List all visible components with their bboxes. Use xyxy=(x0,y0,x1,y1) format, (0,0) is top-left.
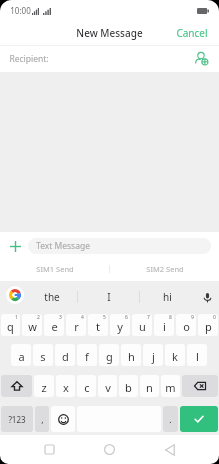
button[interactable]: v xyxy=(98,375,117,397)
staticText: 0 xyxy=(213,314,216,321)
staticText: a xyxy=(18,349,25,364)
staticText: f xyxy=(85,349,89,364)
staticText: s xyxy=(40,349,46,364)
button[interactable]: t xyxy=(88,314,108,336)
staticText: j xyxy=(152,349,155,364)
staticText: 3 xyxy=(59,314,62,321)
button[interactable]: u xyxy=(132,314,152,336)
button[interactable]: p xyxy=(198,314,218,336)
button[interactable]: z xyxy=(34,375,54,397)
button[interactable]: I xyxy=(78,281,139,313)
staticText: 6 xyxy=(125,314,128,321)
staticText: l xyxy=(196,349,199,364)
button[interactable]: g xyxy=(99,344,119,366)
staticText: 1 xyxy=(15,314,18,321)
button[interactable]: . xyxy=(163,406,178,432)
button[interactable]: n xyxy=(140,375,159,397)
staticText: z xyxy=(41,380,47,395)
button[interactable]: the xyxy=(26,281,78,313)
staticText: New Message xyxy=(76,26,143,40)
button[interactable]: Send xyxy=(180,406,218,432)
button[interactable]: Back xyxy=(158,438,181,461)
staticText: q xyxy=(7,319,14,334)
staticText: , xyxy=(41,413,44,425)
button[interactable]: e xyxy=(44,314,64,336)
staticText: p xyxy=(205,319,212,334)
button[interactable]: Voice input xyxy=(196,281,218,313)
button[interactable]: q xyxy=(1,314,20,336)
staticText: 7 xyxy=(147,314,150,321)
staticText: t xyxy=(96,319,100,334)
staticText: b xyxy=(125,380,132,395)
staticText: Recipient: xyxy=(9,53,49,65)
staticText: n xyxy=(146,380,153,395)
staticText: I xyxy=(107,290,111,304)
staticText: 2 xyxy=(37,314,40,321)
staticText: hi xyxy=(163,290,172,304)
staticText: 9 xyxy=(191,314,194,321)
button[interactable]: Recipient: xyxy=(0,46,219,72)
staticText: . xyxy=(169,413,172,425)
staticText: h xyxy=(128,349,135,364)
button[interactable]: m xyxy=(161,375,180,397)
button[interactable]: Add recipient xyxy=(195,52,208,65)
button[interactable]: k xyxy=(165,344,185,366)
button[interactable]: ?123 xyxy=(1,406,33,432)
button[interactable]: i xyxy=(154,314,174,336)
staticText: 4 xyxy=(81,314,84,321)
staticText: e xyxy=(51,319,58,334)
button[interactable]: Recents xyxy=(38,438,61,461)
button[interactable]: Add attachment xyxy=(10,241,21,252)
button[interactable]: SIM1 Send xyxy=(0,258,109,280)
staticText: x xyxy=(63,380,69,395)
staticText: r xyxy=(74,319,79,334)
button[interactable]: r xyxy=(66,314,86,336)
button[interactable]: y xyxy=(110,314,130,336)
button[interactable]: Shift xyxy=(1,375,32,397)
button[interactable]: Google search xyxy=(6,286,24,304)
button[interactable]: x xyxy=(56,375,75,397)
staticText: w xyxy=(28,319,37,334)
button[interactable]: , xyxy=(35,406,49,432)
button[interactable]: f xyxy=(77,344,97,366)
staticText: SIM2 Send xyxy=(146,264,184,274)
staticText: c xyxy=(84,380,90,395)
staticText: u xyxy=(139,319,146,334)
button[interactable]: j xyxy=(143,344,163,366)
staticText: i xyxy=(163,319,166,334)
staticText: k xyxy=(172,349,178,364)
button[interactable]: l xyxy=(187,344,207,366)
button[interactable]: s xyxy=(33,344,53,366)
button[interactable]: o xyxy=(176,314,196,336)
button[interactable]: Backspace xyxy=(182,375,218,397)
staticText: 10:00 xyxy=(10,5,31,16)
staticText: v xyxy=(105,380,111,395)
button[interactable]: hi xyxy=(140,281,194,313)
staticText: d xyxy=(62,349,69,364)
button[interactable]: h xyxy=(121,344,141,366)
button[interactable]: d xyxy=(55,344,75,366)
button[interactable]: a xyxy=(11,344,31,366)
staticText: the xyxy=(44,290,60,304)
button[interactable]: Home xyxy=(98,438,121,461)
staticText: Cancel xyxy=(176,26,208,40)
button[interactable]: c xyxy=(77,375,96,397)
button[interactable]: SIM2 Send xyxy=(110,258,219,280)
staticText: 5 xyxy=(103,314,106,321)
staticText: o xyxy=(183,319,190,334)
staticText: ?123 xyxy=(8,414,26,425)
staticText: Text Message xyxy=(36,240,90,252)
button[interactable]: Cancel xyxy=(165,22,219,44)
staticText: y xyxy=(117,319,123,334)
staticText: SIM1 Send xyxy=(36,264,74,274)
staticText: 8 xyxy=(169,314,172,321)
button[interactable] xyxy=(51,406,75,432)
staticText: g xyxy=(106,349,113,364)
button[interactable]: w xyxy=(22,314,42,336)
staticText: m xyxy=(165,380,176,395)
button[interactable]: Text Message xyxy=(28,238,211,254)
button[interactable]: b xyxy=(119,375,138,397)
